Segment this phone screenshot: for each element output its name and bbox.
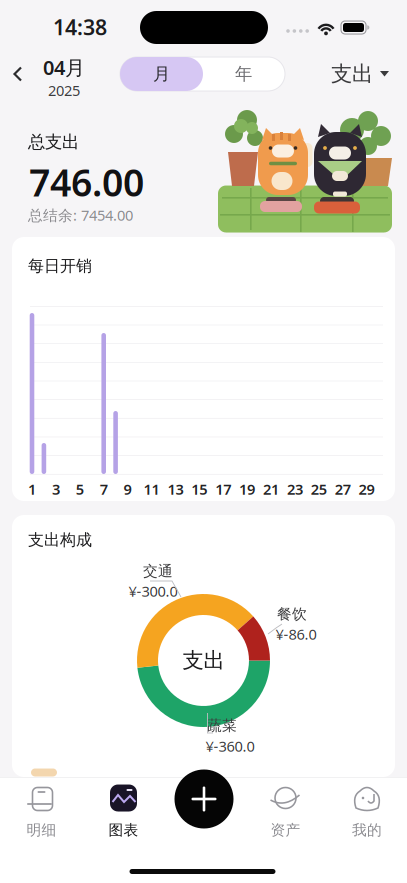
staticText: ¥-360.0	[205, 736, 254, 756]
button[interactable]: 年	[202, 57, 284, 91]
staticText: 总支出	[28, 131, 79, 153]
button[interactable]: 明细	[10, 781, 72, 843]
button[interactable]: 图表	[92, 781, 154, 843]
staticText: 19	[239, 479, 255, 499]
button[interactable]: Back	[3, 54, 33, 94]
staticText: 9	[124, 479, 132, 499]
staticText: 1	[28, 479, 36, 499]
staticText: ¥-300.0	[128, 581, 177, 601]
staticText: 每日开销	[28, 256, 92, 276]
staticText: 2025	[48, 80, 80, 100]
staticText: 15	[191, 479, 207, 499]
button[interactable]: Add	[172, 767, 236, 831]
staticText: 交通	[143, 562, 173, 580]
button[interactable]: 月	[120, 57, 203, 91]
staticText: 年	[235, 63, 252, 85]
staticText: 23	[287, 479, 303, 499]
staticText: 图表	[108, 821, 138, 839]
staticText: 支出构成	[28, 530, 92, 550]
staticText: 17	[215, 479, 231, 499]
staticText: 支出	[331, 61, 373, 87]
staticText: 21	[263, 479, 279, 499]
staticText: 明细	[26, 821, 56, 839]
staticText: 3	[52, 479, 60, 499]
button[interactable]: 我的	[336, 781, 398, 843]
staticText: 25	[311, 479, 327, 499]
staticText: ¥-86.0	[275, 624, 316, 644]
staticText: 746.00	[29, 157, 144, 207]
staticText: 13	[167, 479, 183, 499]
staticText: 7	[100, 479, 108, 499]
staticText: 我的	[352, 821, 382, 839]
staticText: 总结余: 7454.00	[28, 205, 133, 225]
staticText: 支出	[182, 647, 224, 674]
staticText: 蔬菜	[207, 716, 237, 734]
button[interactable]: 资产	[254, 781, 316, 843]
staticText: 14:38	[53, 13, 107, 41]
button[interactable]: 支出	[331, 61, 389, 87]
staticText: 29	[359, 479, 375, 499]
staticText: 04月	[43, 54, 85, 81]
staticText: 资产	[270, 821, 300, 839]
staticText: 27	[335, 479, 351, 499]
staticText: 月	[153, 63, 170, 85]
staticText: 餐饮	[277, 605, 307, 623]
staticText: 11	[143, 479, 159, 499]
staticText: 5	[76, 479, 84, 499]
